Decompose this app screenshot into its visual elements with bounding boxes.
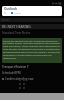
button[interactable]: RE: NEXT HEARING: [0, 24, 64, 29]
staticText: RE: NEXT HEARING: [2, 25, 31, 29]
staticText: Standard Time Notice: [2, 31, 31, 35]
staticText: Please be advised that the scheduled hea…: [3, 39, 61, 60]
button[interactable]: Outlook: [2, 6, 62, 16]
staticText: Outlook: [4, 7, 17, 11]
staticText: Confirm attending now: [5, 77, 34, 81]
staticText: Transport Revision F: [2, 65, 29, 69]
staticText: Schedule/EFM: [2, 71, 21, 75]
staticText: to me: [2, 18, 10, 22]
